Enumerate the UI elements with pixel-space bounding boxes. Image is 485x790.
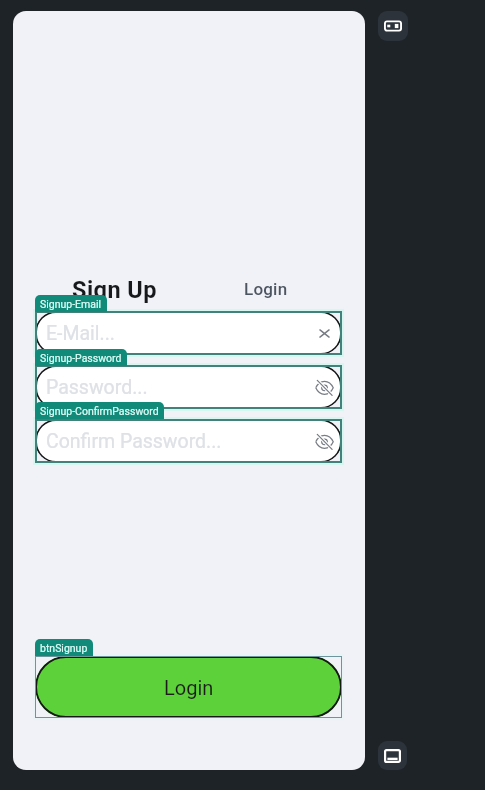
button[interactable]: Password...	[35, 365, 342, 409]
staticText: Sign Up	[72, 276, 157, 304]
button[interactable]: Rotate device	[378, 11, 408, 41]
button[interactable]: Login	[244, 279, 288, 299]
staticText: Signup-Password	[40, 352, 122, 364]
staticText: Login	[244, 279, 288, 299]
staticText: E-Mail...	[46, 322, 116, 345]
staticText: btnSignup	[40, 642, 88, 654]
button[interactable]: Login	[35, 656, 342, 718]
staticText: Signup-Email	[40, 298, 102, 310]
staticText: Signup-ConfirmPassword	[40, 405, 159, 417]
button[interactable]: E-Mail...	[35, 311, 342, 355]
staticText: Login	[164, 676, 214, 699]
button[interactable]: Confirm Password...	[35, 419, 342, 463]
button[interactable]: Resize window	[378, 741, 407, 770]
staticText: Confirm Password...	[46, 430, 222, 453]
staticText: Password...	[46, 376, 148, 399]
